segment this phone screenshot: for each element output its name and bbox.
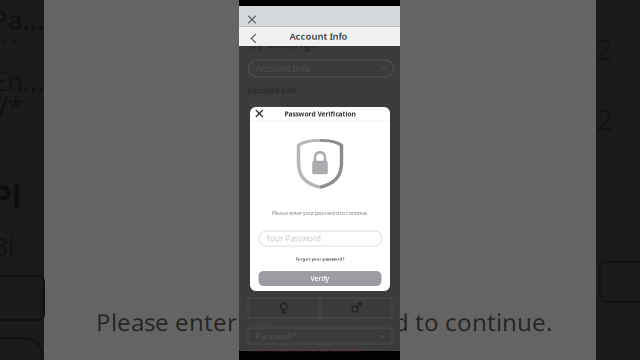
button[interactable]: Close bbox=[254, 108, 264, 118]
staticText: Forgot your password? bbox=[295, 256, 344, 262]
staticText: Please enter your password to continue. bbox=[96, 306, 552, 338]
button[interactable]: Verify bbox=[258, 271, 381, 286]
staticText: Language bbox=[248, 321, 272, 328]
staticText: Account Info bbox=[247, 85, 297, 96]
staticText: ♀ bbox=[279, 300, 289, 315]
staticText: Display Name bbox=[247, 101, 281, 108]
button[interactable]: Close browser bbox=[247, 15, 256, 24]
button[interactable]: Back bbox=[249, 33, 258, 43]
staticText: Enter bbox=[0, 63, 52, 99]
staticText: Account Info bbox=[255, 62, 310, 75]
staticText: Bi bbox=[0, 229, 15, 263]
staticText: ♂ bbox=[350, 300, 362, 315]
staticText: Password bbox=[0, 3, 52, 37]
staticText: Your Password bbox=[266, 233, 321, 244]
button[interactable]: Your Password bbox=[259, 231, 382, 246]
staticText: Password Verification bbox=[284, 110, 355, 118]
staticText: Verify bbox=[310, 274, 329, 283]
button[interactable]: Account Info bbox=[248, 60, 393, 77]
staticText: while some experiences may use the selec… bbox=[248, 346, 359, 353]
staticText: Account Info bbox=[289, 30, 347, 42]
staticText: V* bbox=[0, 89, 23, 125]
staticText: Please enter your password to continue. bbox=[272, 209, 368, 217]
staticText: Pl bbox=[0, 175, 22, 217]
button[interactable]: Forgot your password? bbox=[250, 254, 390, 264]
staticText: My Settings bbox=[246, 36, 317, 52]
staticText: Русский* bbox=[255, 330, 297, 342]
